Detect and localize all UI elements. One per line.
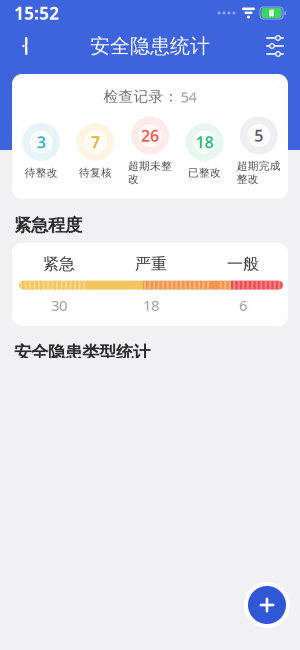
staticText: 6 bbox=[239, 296, 247, 315]
staticText: 7 bbox=[91, 131, 100, 153]
staticText: 紧急程度 bbox=[14, 215, 82, 236]
staticText: 安全隐患统计 bbox=[90, 34, 210, 58]
staticText: 54 bbox=[180, 87, 196, 106]
staticText: 18 bbox=[195, 131, 213, 153]
staticText: 安全隐患类型统计 bbox=[14, 342, 150, 363]
button[interactable]: Back bbox=[4, 26, 46, 66]
staticText: 18 bbox=[143, 296, 159, 315]
staticText: 待整改 bbox=[25, 166, 58, 179]
staticText: 待复核 bbox=[79, 166, 112, 179]
button[interactable]: Filter bbox=[254, 26, 296, 66]
button[interactable]: Add bbox=[244, 582, 290, 628]
staticText: 超期完成整改 bbox=[237, 159, 281, 186]
staticText: 5 bbox=[254, 125, 263, 146]
staticText: 紧急 bbox=[43, 254, 75, 274]
staticText: 30 bbox=[51, 296, 67, 315]
staticText: 已整改 bbox=[188, 166, 221, 179]
staticText: 一般 bbox=[227, 254, 259, 274]
staticText: 超期未整改 bbox=[128, 159, 172, 186]
staticText: 严重 bbox=[135, 254, 167, 274]
staticText: 3 bbox=[37, 131, 46, 153]
staticText: 26 bbox=[141, 125, 159, 146]
staticText: 15:52 bbox=[14, 1, 59, 24]
staticText: 检查记录： bbox=[103, 88, 178, 106]
